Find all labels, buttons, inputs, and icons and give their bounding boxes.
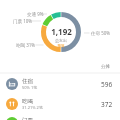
staticText: 372 (101, 100, 113, 109)
staticText: 门票 10% (13, 18, 33, 24)
staticText: 31.21% 2笔 (22, 105, 43, 110)
staticText: 吃喝 (22, 98, 33, 105)
staticText: 分摊 (101, 64, 110, 70)
staticText: 50% 1笔 (22, 85, 38, 90)
button[interactable]: 吃喝 (0, 94, 120, 114)
staticText: 门票 (22, 117, 33, 120)
staticText: 交通 9% (27, 11, 44, 17)
staticText: 吃喝 31% (16, 42, 36, 48)
staticText: 住宿 (22, 78, 33, 85)
staticText: 总支出 (55, 38, 67, 43)
button[interactable]: 住宿 (0, 74, 120, 94)
staticText: 住宿 50% (91, 30, 111, 36)
staticText: 预算 (57, 44, 65, 49)
button[interactable]: 门票 (0, 113, 120, 120)
button[interactable]: 分摊 (101, 64, 110, 70)
staticText: 1,192 (51, 26, 72, 37)
staticText: 596 (101, 80, 113, 89)
